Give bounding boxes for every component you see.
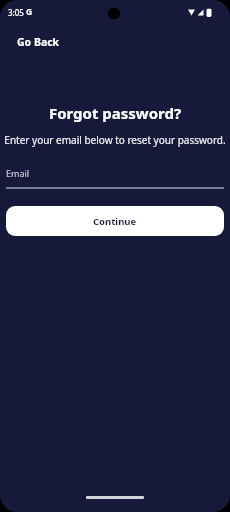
staticText: Go Back <box>17 35 60 49</box>
button[interactable]: Continue <box>6 206 224 236</box>
button[interactable]: Email <box>6 167 224 189</box>
button[interactable]: Go Back <box>17 35 60 49</box>
staticText: Enter your email below to reset your pas… <box>0 133 230 147</box>
staticText: Email <box>6 167 30 179</box>
staticText: G <box>26 6 33 18</box>
staticText: 3:05 <box>8 7 24 18</box>
staticText: Continue <box>93 215 137 228</box>
staticText: Forgot password? <box>0 103 230 123</box>
